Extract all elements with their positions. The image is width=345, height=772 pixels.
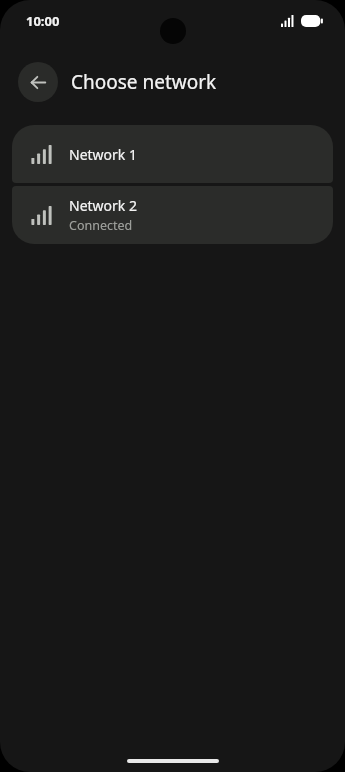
button[interactable]: Network 1 [12, 125, 333, 183]
staticText: 10:00 [26, 12, 60, 30]
staticText: Connected [69, 217, 133, 234]
staticText: Network 1 [69, 145, 137, 164]
button[interactable]: Back [18, 62, 58, 102]
staticText: Choose network [71, 69, 217, 95]
button[interactable]: Network 2 [12, 186, 333, 244]
staticText: Network 2 [69, 196, 137, 215]
